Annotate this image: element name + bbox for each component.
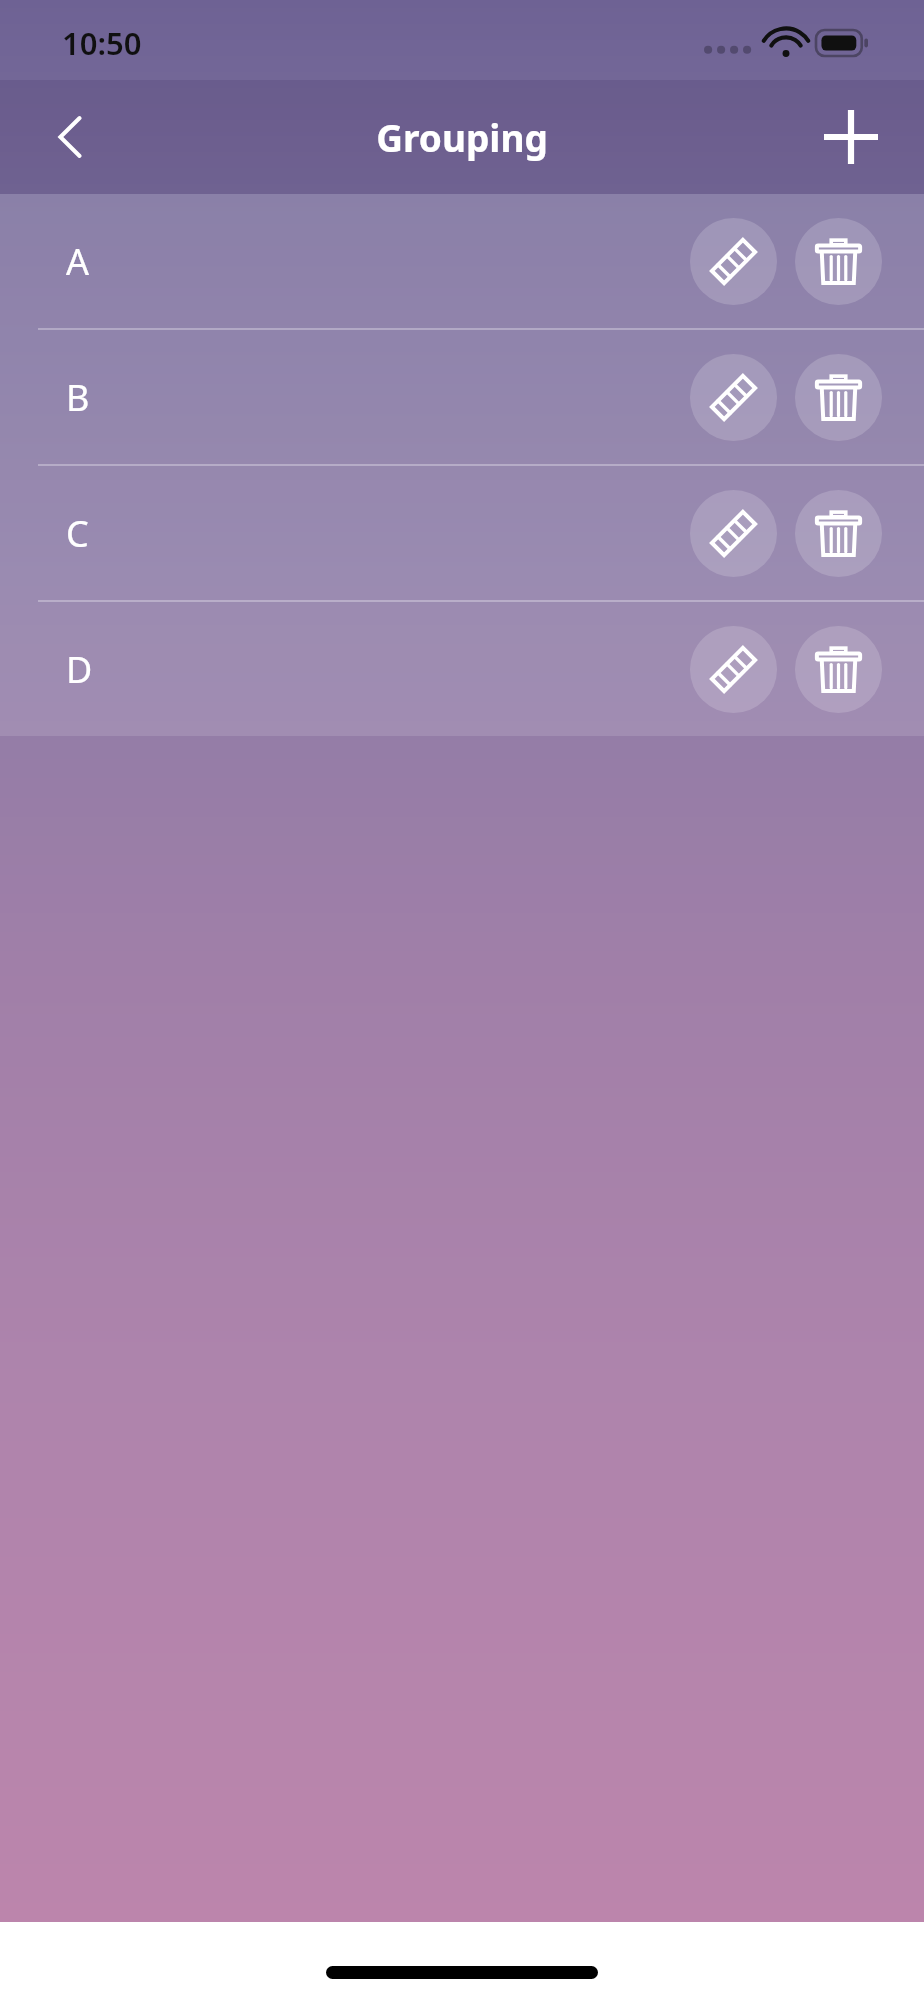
staticText: Grouping (376, 112, 548, 162)
button[interactable]: C (0, 466, 924, 600)
button[interactable]: Edit C (690, 490, 777, 577)
button[interactable]: Delete A (795, 218, 882, 305)
button[interactable]: A (0, 194, 924, 328)
button[interactable]: D (0, 602, 924, 736)
button[interactable]: Edit D (690, 626, 777, 713)
staticText: D (66, 645, 93, 694)
button[interactable]: Delete D (795, 626, 882, 713)
button[interactable]: Delete B (795, 354, 882, 441)
staticText: C (66, 509, 89, 558)
button[interactable]: Add (810, 96, 892, 178)
button[interactable]: B (0, 330, 924, 464)
staticText: B (66, 373, 90, 422)
staticText: A (66, 237, 90, 286)
button[interactable]: Back (34, 101, 106, 173)
button[interactable]: Edit B (690, 354, 777, 441)
staticText: 10:50 (62, 22, 142, 64)
button[interactable]: Delete C (795, 490, 882, 577)
button[interactable]: Edit A (690, 218, 777, 305)
